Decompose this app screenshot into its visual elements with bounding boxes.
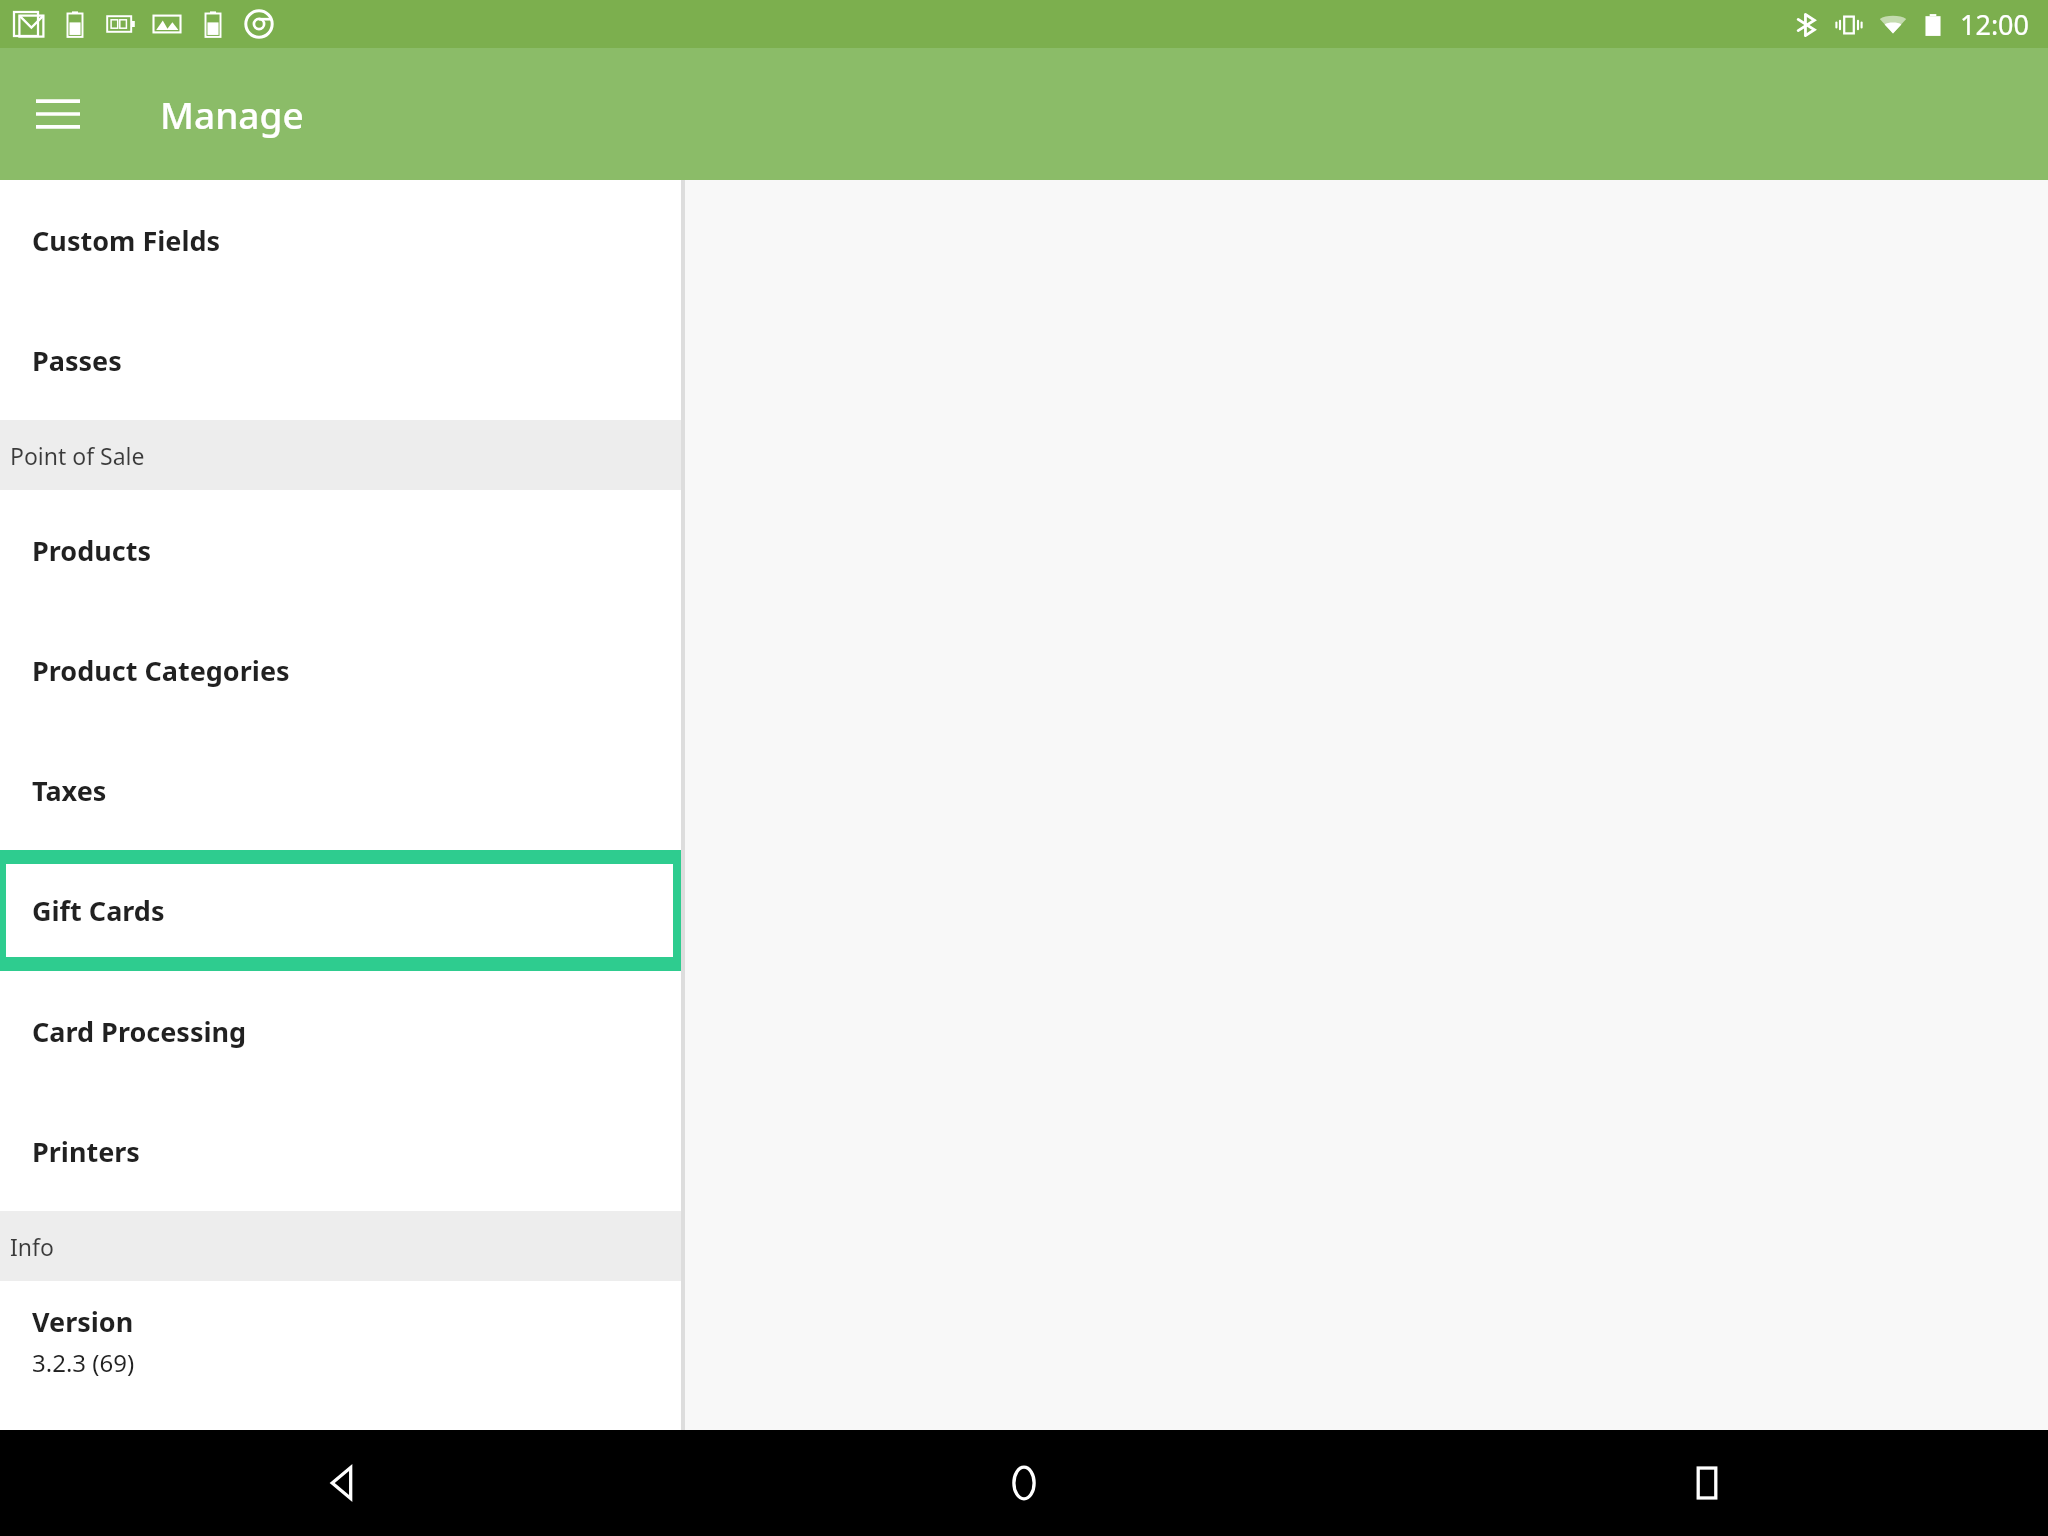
staticText: Product Categories <box>32 652 290 689</box>
button[interactable]: Product Categories <box>0 610 681 730</box>
button[interactable]: Card Processing <box>0 971 681 1091</box>
button[interactable]: Passes <box>0 300 681 420</box>
button[interactable]: Open navigation menu <box>22 78 94 150</box>
staticText: Products <box>32 532 151 569</box>
button[interactable]: Printers <box>0 1091 681 1211</box>
button[interactable]: Recent apps <box>1365 1430 2048 1536</box>
staticText: Passes <box>32 342 122 379</box>
button[interactable]: Taxes <box>0 730 681 850</box>
staticText: 12:00 <box>1960 6 2030 43</box>
staticText: Info <box>10 1231 54 1262</box>
staticText: Card Processing <box>32 1013 247 1050</box>
staticText: Taxes <box>32 772 107 809</box>
staticText: Gift Cards <box>32 892 165 929</box>
staticText: Version <box>32 1303 134 1340</box>
button[interactable]: Products <box>0 490 681 610</box>
staticText: 3.2.3 (69) <box>32 1346 135 1379</box>
button[interactable]: Home <box>682 1430 1365 1536</box>
button[interactable]: Gift Cards <box>6 864 673 957</box>
button[interactable]: Back <box>0 1430 682 1536</box>
button[interactable]: Version <box>0 1281 681 1401</box>
staticText: Manage <box>160 89 304 139</box>
staticText: Printers <box>32 1133 140 1170</box>
staticText: Point of Sale <box>10 440 145 471</box>
staticText: Custom Fields <box>32 222 221 259</box>
button[interactable]: Custom Fields <box>0 180 681 300</box>
